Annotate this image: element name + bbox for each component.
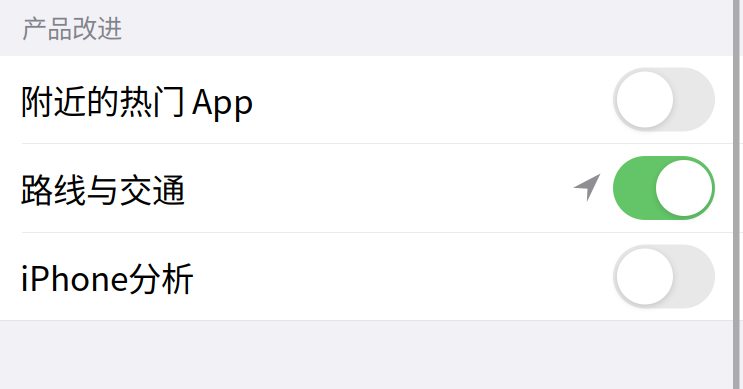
- button[interactable]: 附近的热门 App: [0, 56, 743, 143]
- button[interactable]: iPhone分析: [0, 233, 743, 320]
- staticText: 产品改进: [22, 8, 122, 45]
- button[interactable]: 1: [613, 156, 715, 220]
- staticText: iPhone分析: [20, 252, 194, 301]
- staticText: 附近的热门 App: [20, 75, 254, 124]
- button[interactable]: 0: [613, 67, 715, 131]
- staticText: 路线与交通: [20, 164, 185, 212]
- button[interactable]: 路线与交通: [0, 144, 743, 232]
- button[interactable]: 0: [613, 244, 715, 308]
